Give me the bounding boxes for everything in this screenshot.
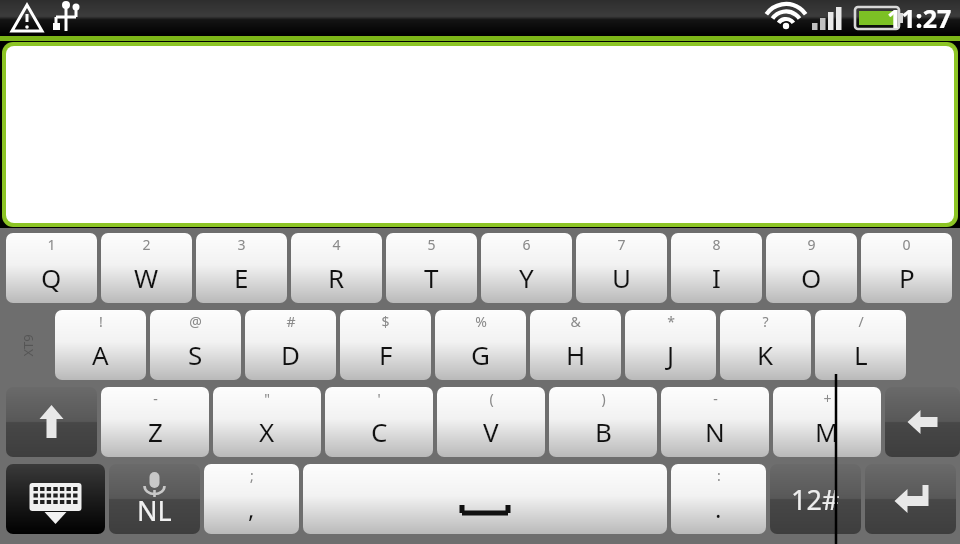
staticText: R: [328, 260, 345, 295]
staticText: 0: [902, 235, 911, 254]
staticText: 12#: [791, 481, 840, 518]
staticText: &: [570, 312, 581, 331]
staticText: I: [712, 260, 721, 295]
staticText: C: [371, 414, 388, 449]
staticText: M: [815, 414, 839, 449]
staticText: 4: [332, 235, 341, 254]
staticText: V: [483, 414, 499, 449]
staticText: @: [189, 312, 202, 331]
button[interactable]: +: [773, 387, 881, 457]
button[interactable]: Space: [303, 464, 667, 534]
staticText: XT9: [18, 333, 36, 356]
button[interactable]: 5: [386, 233, 477, 303]
staticText: ,: [248, 492, 255, 525]
button[interactable]: 8: [671, 233, 762, 303]
staticText: L: [854, 337, 868, 372]
staticText: 7: [617, 235, 626, 254]
staticText: X: [259, 414, 275, 449]
staticText: J: [667, 337, 675, 372]
staticText: H: [566, 337, 586, 372]
staticText: D: [281, 337, 300, 372]
staticText: +: [823, 389, 832, 408]
button[interactable]: 7: [576, 233, 667, 303]
staticText: ': [377, 389, 381, 408]
staticText: -: [153, 389, 158, 408]
staticText: /: [858, 312, 864, 331]
staticText: K: [757, 337, 774, 372]
staticText: %: [475, 312, 487, 331]
button[interactable]: @: [150, 310, 241, 380]
button[interactable]: Hide keyboard: [6, 464, 105, 534]
button[interactable]: &: [530, 310, 621, 380]
button[interactable]: 1: [6, 233, 97, 303]
staticText: G: [471, 337, 490, 372]
staticText: -: [713, 389, 718, 408]
staticText: W: [134, 260, 159, 295]
button[interactable]: Symbols: [770, 464, 861, 534]
staticText: P: [899, 260, 915, 295]
button[interactable]: ;: [204, 464, 299, 534]
staticText: 11:27: [887, 1, 952, 35]
staticText: ): [601, 389, 606, 408]
staticText: N: [705, 414, 725, 449]
staticText: 3: [237, 235, 246, 254]
button[interactable]: /: [815, 310, 906, 380]
staticText: $: [381, 312, 390, 331]
staticText: 1: [47, 235, 56, 254]
button[interactable]: ): [549, 387, 657, 457]
button[interactable]: NL: [109, 464, 200, 534]
button[interactable]: 0: [861, 233, 952, 303]
button[interactable]: Backspace: [885, 387, 960, 457]
staticText: B: [595, 414, 612, 449]
button[interactable]: Shift: [6, 387, 97, 457]
staticText: S: [188, 337, 203, 372]
staticText: Y: [519, 260, 534, 295]
staticText: (: [489, 389, 494, 408]
staticText: #: [286, 312, 296, 331]
button[interactable]: 6: [481, 233, 572, 303]
button[interactable]: 2: [101, 233, 192, 303]
staticText: 9: [807, 235, 816, 254]
staticText: U: [612, 260, 632, 295]
button[interactable]: [6, 46, 954, 223]
button[interactable]: -: [661, 387, 769, 457]
staticText: T: [424, 260, 439, 295]
button[interactable]: %: [435, 310, 526, 380]
staticText: NL: [137, 492, 172, 529]
button[interactable]: ?: [720, 310, 811, 380]
button[interactable]: 4: [291, 233, 382, 303]
button[interactable]: (: [437, 387, 545, 457]
staticText: !: [99, 312, 103, 331]
staticText: A: [92, 337, 109, 372]
staticText: E: [234, 260, 249, 295]
staticText: O: [801, 260, 822, 295]
button[interactable]: :: [671, 464, 766, 534]
staticText: :: [717, 466, 721, 485]
button[interactable]: ": [213, 387, 321, 457]
staticText: 2: [142, 235, 151, 254]
staticText: Z: [148, 414, 163, 449]
button[interactable]: !: [55, 310, 146, 380]
button[interactable]: ': [325, 387, 433, 457]
button[interactable]: Enter: [865, 464, 956, 534]
button[interactable]: *: [625, 310, 716, 380]
button[interactable]: -: [101, 387, 209, 457]
staticText: *: [667, 312, 675, 331]
button[interactable]: #: [245, 310, 336, 380]
staticText: 8: [712, 235, 721, 254]
staticText: ;: [250, 466, 254, 485]
button[interactable]: 9: [766, 233, 857, 303]
staticText: 6: [522, 235, 531, 254]
button[interactable]: $: [340, 310, 431, 380]
staticText: F: [379, 337, 393, 372]
button[interactable]: 3: [196, 233, 287, 303]
staticText: Q: [41, 260, 62, 295]
staticText: ?: [762, 312, 769, 331]
staticText: ": [264, 389, 270, 408]
staticText: 5: [427, 235, 436, 254]
staticText: .: [715, 492, 722, 525]
